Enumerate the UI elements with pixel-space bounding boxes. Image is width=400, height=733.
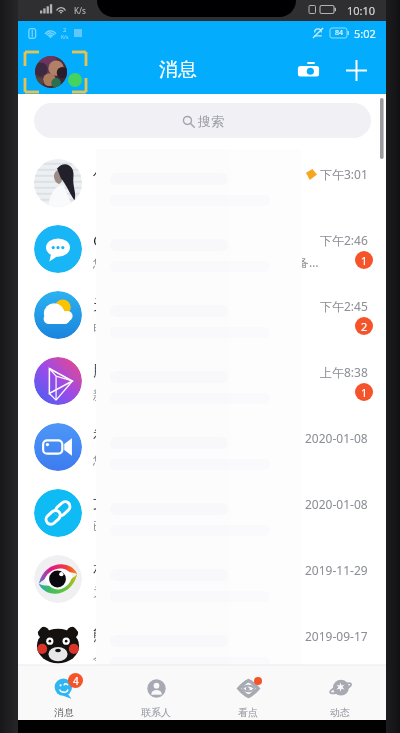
button[interactable]: Add <box>338 52 374 88</box>
staticText: 2020-01-08 <box>305 430 368 446</box>
staticText: 下午2:46 <box>320 232 368 248</box>
staticText: 您有一个未接来电 <box>93 452 330 467</box>
staticText: 为你生成了新的回忆相册请 <box>93 584 330 599</box>
button[interactable]: Profile <box>35 56 67 88</box>
staticText: 4 <box>73 674 79 688</box>
button[interactable]: 动态 <box>294 665 386 720</box>
staticText: 1 <box>361 385 368 400</box>
button[interactable]: 搜索 <box>34 103 371 138</box>
staticText: 消息 <box>54 706 74 719</box>
staticText: 2 <box>361 319 368 334</box>
staticText: K/s <box>74 5 86 16</box>
button[interactable]: 联系人 <box>110 665 202 720</box>
button[interactable]: 文件传输 <box>18 480 386 546</box>
staticText: 上午8:38 <box>320 364 368 380</box>
staticText: 熊本熊 <box>93 626 330 645</box>
staticText: 看点 <box>238 706 258 719</box>
button[interactable]: QQ团队 <box>18 216 386 282</box>
staticText: 1 <box>361 253 368 268</box>
staticText: 下午3:01 <box>320 166 368 182</box>
staticText: 2019-11-29 <box>305 562 368 578</box>
staticText: 小鱼干 <box>93 164 330 183</box>
staticText: 新剧上线快来一起追剧分享给好友… <box>93 386 330 402</box>
staticText: 腾讯视频 <box>93 362 330 381</box>
button[interactable]: 熊本熊 <box>18 612 386 665</box>
staticText: 消息 <box>159 58 197 82</box>
staticText: K/s <box>61 34 69 41</box>
staticText: 下午2:45 <box>320 298 368 314</box>
staticText: 2019-09-17 <box>305 628 368 644</box>
button[interactable]: Camera <box>290 52 326 88</box>
staticText: 相册助手 <box>93 560 330 579</box>
staticText: 2020-01-08 <box>305 496 368 512</box>
button[interactable]: 视频通话 <box>18 414 386 480</box>
staticText: 视频通话 <box>93 428 330 447</box>
staticText: 5:02 <box>354 26 376 41</box>
button[interactable]: 4 <box>18 665 110 720</box>
staticText: 10:10 <box>347 3 376 18</box>
staticText: 2 <box>63 26 67 34</box>
button[interactable]: 相册助手 <box>18 546 386 612</box>
staticText: 动态 <box>330 706 350 719</box>
staticText: 文件传输 <box>93 494 330 513</box>
staticText: 搜索 <box>198 113 224 129</box>
staticText: 天气助手 <box>93 296 330 315</box>
staticText: 84 <box>335 28 344 38</box>
button[interactable]: 天气助手 <box>18 282 386 348</box>
staticText: 今天也是元气满满的一天不是身… <box>93 650 330 666</box>
button[interactable]: 小鱼干 <box>18 150 386 216</box>
button[interactable]: 看点 <box>202 665 294 720</box>
staticText: 已收到一个文件 <box>93 518 330 533</box>
staticText: QQ团队 <box>93 230 330 250</box>
button[interactable]: 腾讯视频 <box>18 348 386 414</box>
staticText: 明天有小雨出门记得带伞哦一起来听~ <box>93 320 330 336</box>
staticText: 联系人 <box>141 706 171 719</box>
staticText: 您的账号已开启设备锁请注意保管好设备… <box>93 254 330 270</box>
